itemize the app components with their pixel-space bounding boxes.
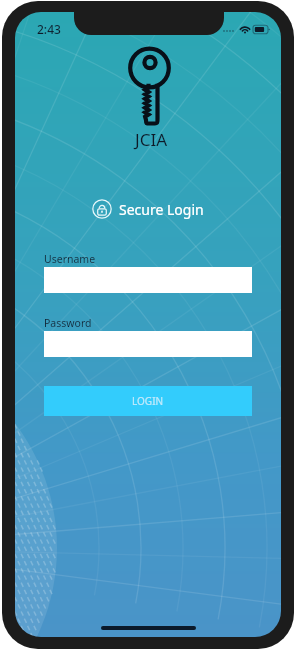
button[interactable]: LOGIN [44, 386, 252, 416]
staticText: 2:43 [37, 21, 61, 37]
staticText: Password [44, 316, 92, 330]
staticText: JCIA [135, 128, 168, 151]
other: Secure [92, 199, 112, 219]
staticText: Username [44, 252, 96, 266]
button[interactable]: Secure [15, 199, 281, 219]
staticText: Secure Login [119, 200, 204, 219]
staticText: LOGIN [132, 394, 164, 408]
